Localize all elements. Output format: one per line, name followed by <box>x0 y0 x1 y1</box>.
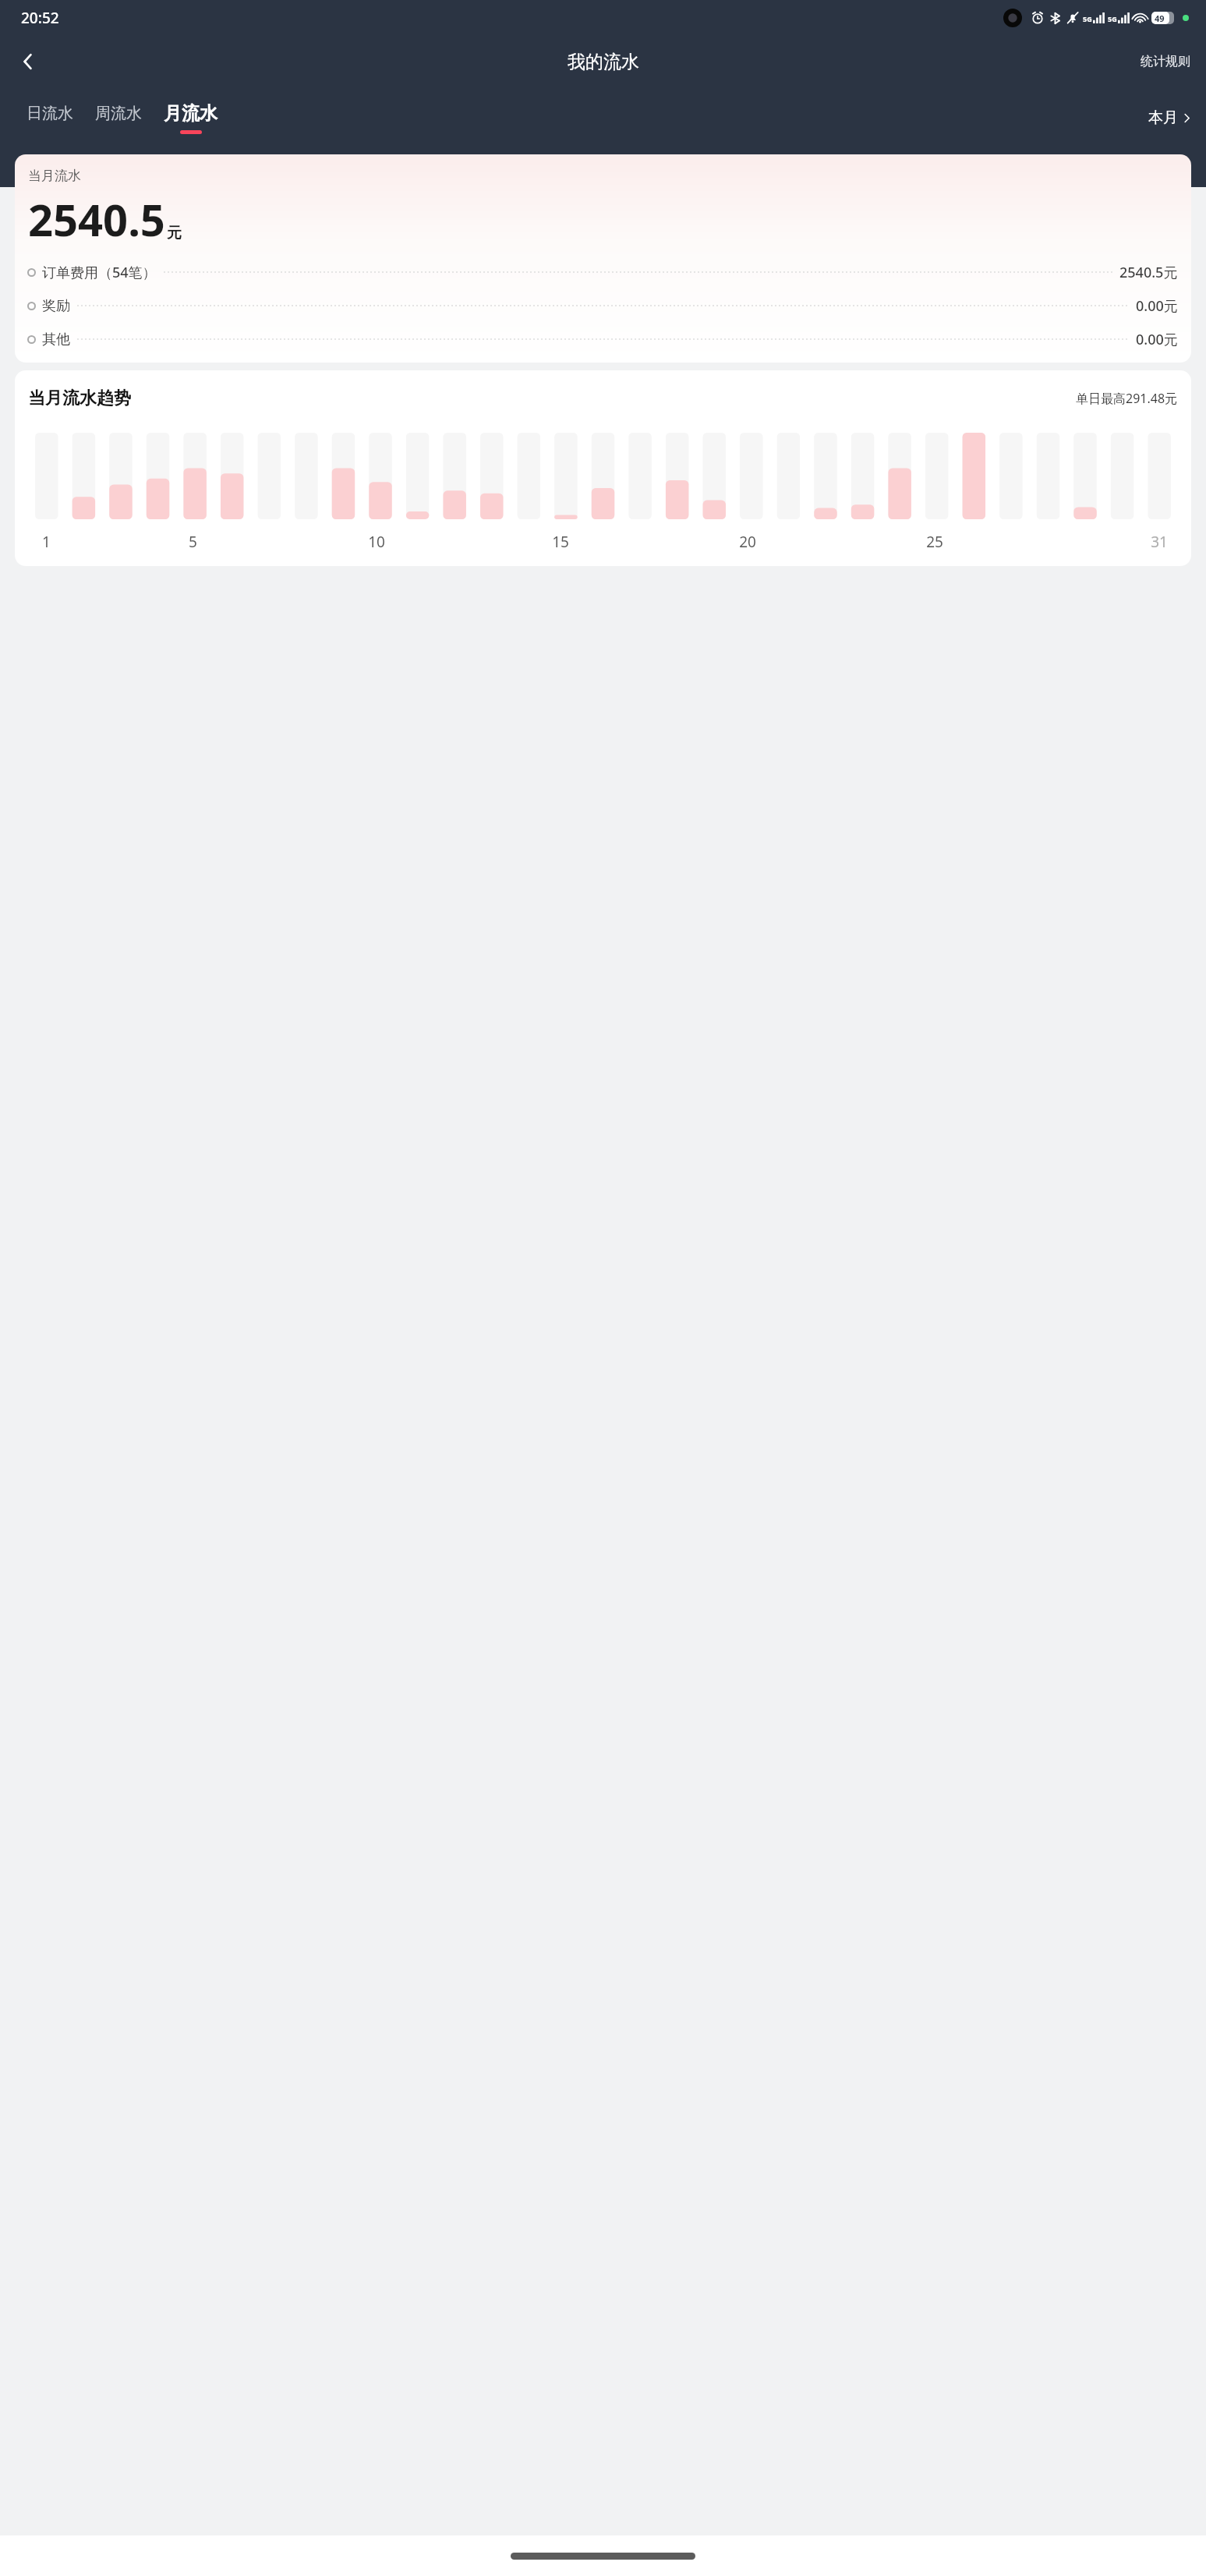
button[interactable]: 本月 <box>1134 101 1206 135</box>
button[interactable]: Back <box>8 41 48 82</box>
staticText: 统计规则 <box>1141 54 1190 69</box>
staticText: 当月流水 <box>28 168 81 184</box>
button[interactable]: 周流水 <box>84 99 153 137</box>
button[interactable]: 月流水 <box>153 97 228 139</box>
staticText: 20 <box>739 532 756 549</box>
staticText: 本月 <box>1148 108 1178 127</box>
staticText: 当月流水趋势 <box>28 387 131 409</box>
staticText: 49 <box>1155 12 1165 24</box>
staticText: 10 <box>368 532 385 549</box>
staticText: 20:52 <box>21 8 59 28</box>
staticText: 1 <box>42 532 51 549</box>
staticText: 其他 <box>42 331 70 349</box>
staticText: 0.00元 <box>1136 330 1178 349</box>
staticText: 单日最高291.48元 <box>1076 390 1178 407</box>
staticText: 元 <box>167 224 182 242</box>
staticText: 我的流水 <box>568 51 639 73</box>
button[interactable]: 日流水 <box>16 99 84 137</box>
staticText: 订单费用（54笔） <box>42 263 157 282</box>
staticText: 2540.5 <box>28 189 165 249</box>
staticText: 2540.5元 <box>1119 263 1178 282</box>
staticText: 5G <box>1108 14 1117 23</box>
staticText: 31 <box>1151 532 1168 549</box>
staticText: 15 <box>552 532 569 549</box>
staticText: 日流水 <box>27 104 73 123</box>
button[interactable]: 统计规则 <box>1125 46 1206 77</box>
staticText: 0.00元 <box>1136 296 1178 316</box>
staticText: 月流水 <box>164 102 218 125</box>
staticText: 5 <box>189 532 197 549</box>
staticText: 周流水 <box>95 104 142 123</box>
staticText: 5G <box>1083 14 1092 23</box>
staticText: 25 <box>926 532 943 549</box>
staticText: 奖励 <box>42 297 70 315</box>
